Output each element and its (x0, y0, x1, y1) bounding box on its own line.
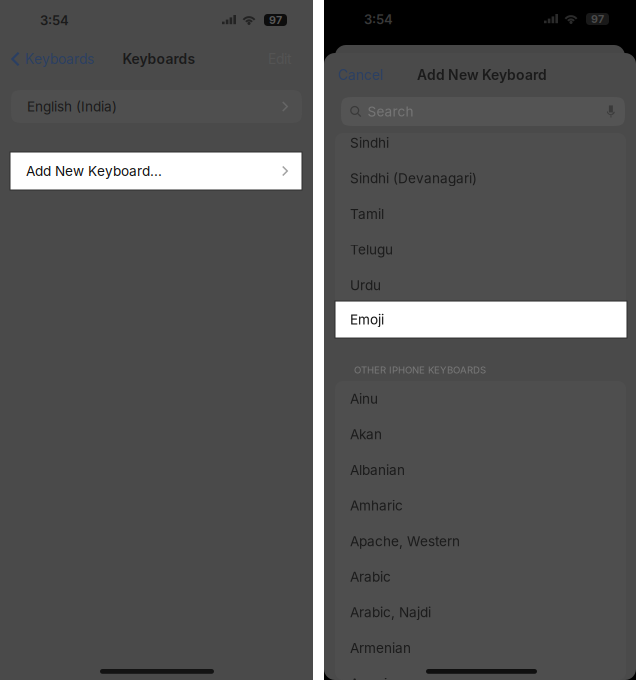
button[interactable]: Arabic (335, 559, 626, 595)
button[interactable]: English (India) (11, 90, 302, 123)
staticText: Edit (268, 51, 292, 67)
staticText: 3:54 (364, 12, 393, 27)
staticText: Keyboards (25, 51, 94, 67)
staticText: 97 (591, 12, 604, 25)
button[interactable]: Emoji (335, 301, 627, 338)
staticText: Add New Keyboard (417, 67, 547, 83)
staticText: English (India) (27, 98, 117, 115)
staticText: Apache, Western (350, 533, 460, 549)
staticText: Search (367, 103, 413, 120)
staticText: Tamil (350, 206, 384, 222)
button[interactable]: American (335, 666, 626, 680)
button[interactable]: Telugu (335, 232, 626, 267)
staticText: Amharic (350, 497, 403, 514)
button[interactable]: Cancel (338, 62, 408, 88)
staticText: Arabic, Najdi (350, 604, 431, 621)
staticText: Albanian (350, 462, 405, 478)
staticText: Armenian (350, 640, 411, 656)
button[interactable]: Albanian (335, 452, 626, 488)
staticText: Cancel (338, 67, 383, 83)
staticText: OTHER IPHONE KEYBOARDS (354, 364, 486, 376)
button[interactable]: Ainu (335, 381, 626, 417)
button[interactable]: Sindhi (Devanagari) (335, 161, 626, 196)
button[interactable]: Akan (335, 417, 626, 452)
button[interactable]: Urdu (335, 267, 626, 303)
staticText: Sindhi (Devanagari) (350, 170, 477, 187)
staticText: Add New Keyboard... (26, 163, 162, 179)
staticText: 97 (269, 13, 282, 26)
staticText: Emoji (350, 311, 384, 328)
button[interactable]: Sindhi (335, 125, 626, 161)
staticText: Keyboards (122, 51, 195, 67)
button[interactable]: Apache, Western (335, 523, 626, 559)
staticText: Akan (350, 426, 382, 443)
staticText: American (350, 675, 411, 680)
staticText: Telugu (350, 241, 393, 258)
staticText: Arabic (350, 569, 391, 585)
button[interactable]: Tamil (335, 196, 626, 232)
button[interactable]: Amharic (335, 488, 626, 523)
staticText: Ainu (350, 391, 378, 407)
button[interactable]: Arabic, Najdi (335, 595, 626, 630)
button[interactable]: Add New Keyboard... (10, 152, 302, 190)
staticText: Sindhi (350, 135, 389, 151)
button[interactable]: Armenian (335, 630, 626, 666)
button[interactable]: Keyboards (6, 44, 108, 74)
staticText: 3:54 (40, 13, 69, 28)
staticText: Urdu (350, 277, 381, 293)
